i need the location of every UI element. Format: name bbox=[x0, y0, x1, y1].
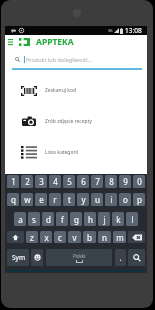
staticText: 0 bbox=[137, 176, 142, 187]
staticText: l bbox=[131, 214, 134, 225]
button[interactable]: v bbox=[68, 231, 81, 243]
staticText: q bbox=[11, 194, 16, 205]
staticText: Polski bbox=[73, 253, 86, 259]
button[interactable]: 2 bbox=[21, 175, 33, 188]
button[interactable]: 1 bbox=[7, 175, 19, 188]
staticText: Lista kategorii bbox=[45, 149, 79, 156]
button[interactable]: Search bbox=[128, 249, 145, 266]
staticText: 36 bbox=[108, 28, 113, 33]
staticText: s bbox=[32, 214, 36, 225]
button[interactable]: y bbox=[77, 193, 89, 206]
staticText: r bbox=[53, 194, 57, 205]
staticText: APPTEKA bbox=[36, 36, 74, 48]
staticText: 8 bbox=[109, 176, 114, 187]
button[interactable]: Produkt lub dolegliwość... bbox=[5, 51, 147, 68]
staticText: h bbox=[88, 214, 93, 225]
staticText: b bbox=[87, 232, 92, 243]
staticText: u bbox=[95, 194, 100, 205]
staticText: i bbox=[110, 194, 113, 205]
button[interactable]: 6 bbox=[77, 175, 89, 188]
button[interactable]: h bbox=[84, 212, 96, 226]
button[interactable]: . bbox=[115, 249, 126, 266]
button[interactable]: r bbox=[49, 193, 61, 206]
button[interactable]: p bbox=[133, 193, 145, 206]
button[interactable]: Emoji bbox=[31, 249, 43, 266]
button[interactable]: Shift bbox=[7, 231, 24, 243]
button[interactable]: a bbox=[14, 212, 26, 226]
staticText: 7 bbox=[95, 176, 100, 187]
button[interactable]: t bbox=[63, 193, 75, 206]
staticText: f bbox=[61, 214, 64, 225]
button[interactable]: 4 bbox=[49, 175, 61, 188]
button[interactable]: k bbox=[112, 212, 124, 226]
button[interactable]: Polski bbox=[46, 249, 112, 266]
staticText: Zrób zdjęcie recepty bbox=[45, 118, 93, 125]
staticText: w bbox=[24, 194, 31, 205]
staticText: 3 bbox=[39, 176, 44, 187]
button[interactable]: Sym bbox=[7, 249, 29, 266]
staticText: 1 bbox=[11, 176, 16, 187]
staticText: t bbox=[68, 194, 71, 205]
staticText: k bbox=[116, 214, 121, 225]
button[interactable]: i bbox=[105, 193, 117, 206]
button[interactable]: j bbox=[98, 212, 110, 226]
button[interactable]: 3 bbox=[35, 175, 47, 188]
staticText: n bbox=[102, 232, 107, 243]
button[interactable]: 8 bbox=[105, 175, 117, 188]
staticText: d bbox=[46, 214, 51, 225]
button[interactable]: f bbox=[56, 212, 68, 226]
staticText: a bbox=[18, 214, 23, 225]
button[interactable]: e bbox=[35, 193, 47, 206]
staticText: 2 bbox=[25, 176, 30, 187]
button[interactable]: Lista kategorii bbox=[5, 137, 147, 168]
staticText: g bbox=[74, 214, 79, 225]
staticText: 4 bbox=[53, 176, 58, 187]
staticText: c bbox=[58, 232, 62, 243]
staticText: j bbox=[103, 214, 106, 225]
button[interactable]: u bbox=[91, 193, 103, 206]
button[interactable]: d bbox=[42, 212, 54, 226]
staticText: Produkt lub dolegliwość... bbox=[26, 56, 93, 63]
button[interactable]: s bbox=[28, 212, 40, 226]
staticText: o bbox=[123, 194, 128, 205]
button[interactable]: l bbox=[126, 212, 138, 226]
button[interactable]: w bbox=[21, 193, 33, 206]
button[interactable]: b bbox=[83, 231, 96, 243]
button[interactable]: m bbox=[113, 231, 126, 243]
staticText: v bbox=[72, 232, 77, 243]
button[interactable]: 5 bbox=[63, 175, 75, 188]
button[interactable]: q bbox=[7, 193, 19, 206]
button[interactable]: c bbox=[54, 231, 66, 243]
button[interactable]: z bbox=[26, 231, 38, 243]
button[interactable]: 7 bbox=[91, 175, 103, 188]
staticText: z bbox=[30, 232, 34, 243]
staticText: 6 bbox=[81, 176, 86, 187]
staticText: 9 bbox=[123, 176, 128, 187]
staticText: Zeskanuj kod bbox=[45, 87, 77, 94]
button[interactable]: n bbox=[98, 231, 111, 243]
staticText: 5 bbox=[67, 176, 72, 187]
staticText: p bbox=[137, 194, 142, 205]
button[interactable]: 9 bbox=[119, 175, 131, 188]
staticText: m bbox=[116, 232, 124, 243]
button[interactable]: x bbox=[40, 231, 52, 243]
staticText: e bbox=[39, 194, 44, 205]
button[interactable]: Backspace bbox=[128, 231, 145, 243]
staticText: y bbox=[81, 194, 86, 205]
button[interactable]: 0 bbox=[133, 175, 145, 188]
button[interactable]: g bbox=[70, 212, 82, 226]
button[interactable]: Zeskanuj kod bbox=[5, 75, 147, 106]
button[interactable]: o bbox=[119, 193, 131, 206]
staticText: 13:08 bbox=[125, 26, 142, 35]
staticText: Sym bbox=[12, 253, 25, 262]
staticText: x bbox=[44, 232, 49, 243]
staticText: . bbox=[119, 252, 122, 263]
button[interactable]: Menu bbox=[6, 35, 15, 48]
button[interactable]: Zrób zdjęcie recepty bbox=[5, 106, 147, 137]
